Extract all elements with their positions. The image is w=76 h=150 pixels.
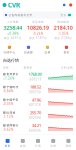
button[interactable]: 比亚迪 xyxy=(0,108,76,121)
staticText: 行情中心 xyxy=(3,51,15,54)
button[interactable]: 我的 xyxy=(61,134,76,150)
staticText: 最新价 xyxy=(23,66,32,69)
button[interactable]: 交易 xyxy=(46,134,61,150)
staticText: 188.52 xyxy=(30,84,41,90)
staticText: 名称 xyxy=(3,66,9,69)
staticText: -0.62% xyxy=(3,128,13,131)
staticText: 成交 4231亿 xyxy=(4,36,22,40)
button[interactable]: 中国平安 xyxy=(0,96,76,108)
staticText: -1.12% xyxy=(3,115,13,119)
staticText: 600036 xyxy=(29,129,41,132)
staticText: CVR xyxy=(8,1,20,9)
staticText: 34.21 xyxy=(32,123,41,128)
button[interactable]: 深证成指 xyxy=(25,20,51,40)
staticText: 中国平安 xyxy=(7,98,19,101)
button[interactable]: 招商银行 xyxy=(0,121,76,134)
button[interactable]: 行情 xyxy=(30,134,46,150)
button[interactable]: 首页 xyxy=(0,134,15,150)
staticText: 分时走势 xyxy=(61,66,73,69)
button[interactable]: 自选股 xyxy=(19,40,38,56)
staticText: 1768.00 xyxy=(28,72,41,77)
staticText: 比亚迪 xyxy=(7,111,16,114)
staticText: 首页 xyxy=(5,144,11,148)
staticText: 成交 2143亿 xyxy=(54,36,72,40)
staticText: 255.70 xyxy=(30,110,41,115)
staticText: 深证成指 xyxy=(32,20,44,23)
button[interactable]: 创业板指 xyxy=(51,20,76,40)
staticText: 宁德时代 xyxy=(7,85,19,89)
button[interactable]: 行情中心 xyxy=(0,40,19,56)
staticText: 2184.10 xyxy=(54,24,73,31)
staticText: +1.26% xyxy=(3,77,14,80)
staticText: 我的 xyxy=(65,144,71,148)
staticText: 资讯 xyxy=(63,51,69,54)
staticText: 47.86 xyxy=(32,97,41,102)
staticText: 更多 xyxy=(60,13,66,17)
staticText: 上证指数 xyxy=(7,20,19,23)
button[interactable]: Search xyxy=(62,2,67,7)
staticText: -0.35% xyxy=(3,102,13,106)
staticText: +0.38% xyxy=(7,32,18,35)
staticText: -0.26% xyxy=(33,32,43,35)
staticText: 300750 xyxy=(29,90,41,94)
staticText: 601318 xyxy=(29,103,41,107)
staticText: 交易 xyxy=(44,51,50,54)
staticText: 自选股 xyxy=(24,51,33,54)
button[interactable]: 交易 xyxy=(38,40,57,56)
button[interactable]: 资讯 xyxy=(57,40,76,56)
staticText: 公告内容提示文字 xyxy=(8,13,32,17)
button[interactable]: 宁德时代 xyxy=(0,83,76,96)
staticText: -1.05% xyxy=(58,32,68,35)
staticText: 行情 xyxy=(35,144,41,148)
staticText: -0.84% xyxy=(3,89,13,93)
staticText: 600519 xyxy=(29,78,41,81)
staticText: 贵州茅台 xyxy=(7,73,19,76)
staticText: 招商银行 xyxy=(7,124,19,127)
button[interactable]: 公告内容提示文字 xyxy=(0,10,76,20)
staticText: 自选 xyxy=(20,144,26,148)
button[interactable]: 贵州茅台 xyxy=(0,70,76,83)
staticText: 成交 5187亿 xyxy=(29,36,47,40)
button[interactable]: Notifications xyxy=(68,2,73,8)
staticText: 创业板指 xyxy=(57,20,69,23)
staticText: 002594 xyxy=(29,116,41,120)
button[interactable]: 自选 xyxy=(15,134,30,150)
staticText: 自选行情 xyxy=(3,58,19,63)
button[interactable]: 上证指数 xyxy=(0,20,25,40)
staticText: 3258.44 xyxy=(3,24,22,31)
staticText: 10826.19 xyxy=(27,24,49,31)
staticText: 交易 xyxy=(50,144,56,148)
